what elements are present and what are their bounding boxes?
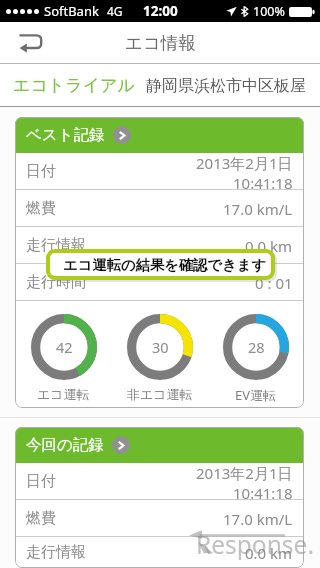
staticText: エコ運転の結果を確認できます — [63, 256, 266, 274]
staticText: 100% — [253, 3, 285, 20]
staticText: 燃費 — [26, 199, 56, 218]
button[interactable]: 今回の記録 — [15, 427, 304, 463]
staticText: 10:41:18 — [233, 483, 293, 500]
staticText: 17.0 km/L — [223, 199, 293, 219]
button[interactable]: ベスト記録 — [15, 117, 304, 153]
button[interactable]: Back — [0, 23, 56, 64]
button[interactable]: 燃費 — [15, 500, 304, 537]
staticText: 日付 — [26, 162, 56, 181]
staticText: 走行情報 — [26, 236, 86, 255]
staticText: 0.0 km — [245, 236, 293, 256]
staticText: 12:00 — [143, 2, 178, 20]
button[interactable]: 日付 — [15, 463, 304, 500]
button[interactable]: 走行情報 — [15, 537, 304, 568]
staticText: 42 — [56, 337, 73, 357]
staticText: 30 — [152, 337, 169, 357]
staticText: 10:41:18 — [233, 173, 293, 190]
staticText: ベスト記録 — [26, 125, 105, 145]
staticText: 非エコ運転 — [127, 386, 193, 402]
staticText: 4G — [107, 3, 123, 19]
staticText: SoftBank — [44, 2, 99, 20]
staticText: 走行時間 — [26, 273, 86, 292]
staticText: 0 : 01 — [255, 273, 293, 293]
staticText: エコ運転 — [37, 386, 90, 402]
staticText: 0.0 km — [245, 543, 293, 563]
staticText: エコ情報 — [125, 32, 196, 54]
staticText: 2013年2月1日 — [196, 153, 293, 173]
staticText: 今回の記録 — [26, 435, 104, 455]
staticText: 走行情報 — [26, 543, 86, 562]
button[interactable]: 日付 — [15, 153, 304, 190]
staticText: 28 — [248, 337, 265, 357]
button[interactable]: 燃費 — [15, 190, 304, 227]
staticText: EV運転 — [235, 386, 277, 404]
button[interactable]: 走行時間 — [15, 264, 304, 301]
staticText: エコトライアル — [13, 75, 135, 96]
staticText: 2013年2月1日 — [196, 463, 293, 483]
staticText: Response. — [196, 528, 314, 561]
staticText: 17.0 km/L — [223, 509, 293, 529]
button[interactable]: 走行情報 — [15, 227, 304, 264]
staticText: 燃費 — [26, 509, 56, 528]
staticText: 静岡県浜松市中区板屋 — [146, 76, 306, 96]
staticText: 日付 — [26, 472, 56, 491]
